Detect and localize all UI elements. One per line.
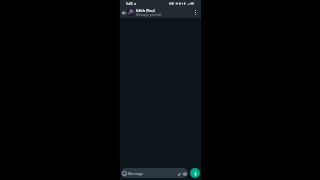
button[interactable]: Voice message xyxy=(190,168,200,178)
button[interactable]: Edith (You) xyxy=(136,8,192,17)
button[interactable]: Back xyxy=(121,10,127,16)
staticText: Edith (You) xyxy=(136,8,155,13)
staticText: 5:45 xyxy=(126,1,133,6)
button[interactable]: Attach xyxy=(176,171,181,176)
button[interactable]: Emoji xyxy=(122,171,127,176)
button[interactable]: Camera xyxy=(182,171,187,176)
staticText: Message xyxy=(128,171,144,176)
button[interactable]: More options xyxy=(192,9,199,16)
button[interactable]: Emoji xyxy=(121,168,188,178)
staticText: Message yourself xyxy=(136,13,162,17)
